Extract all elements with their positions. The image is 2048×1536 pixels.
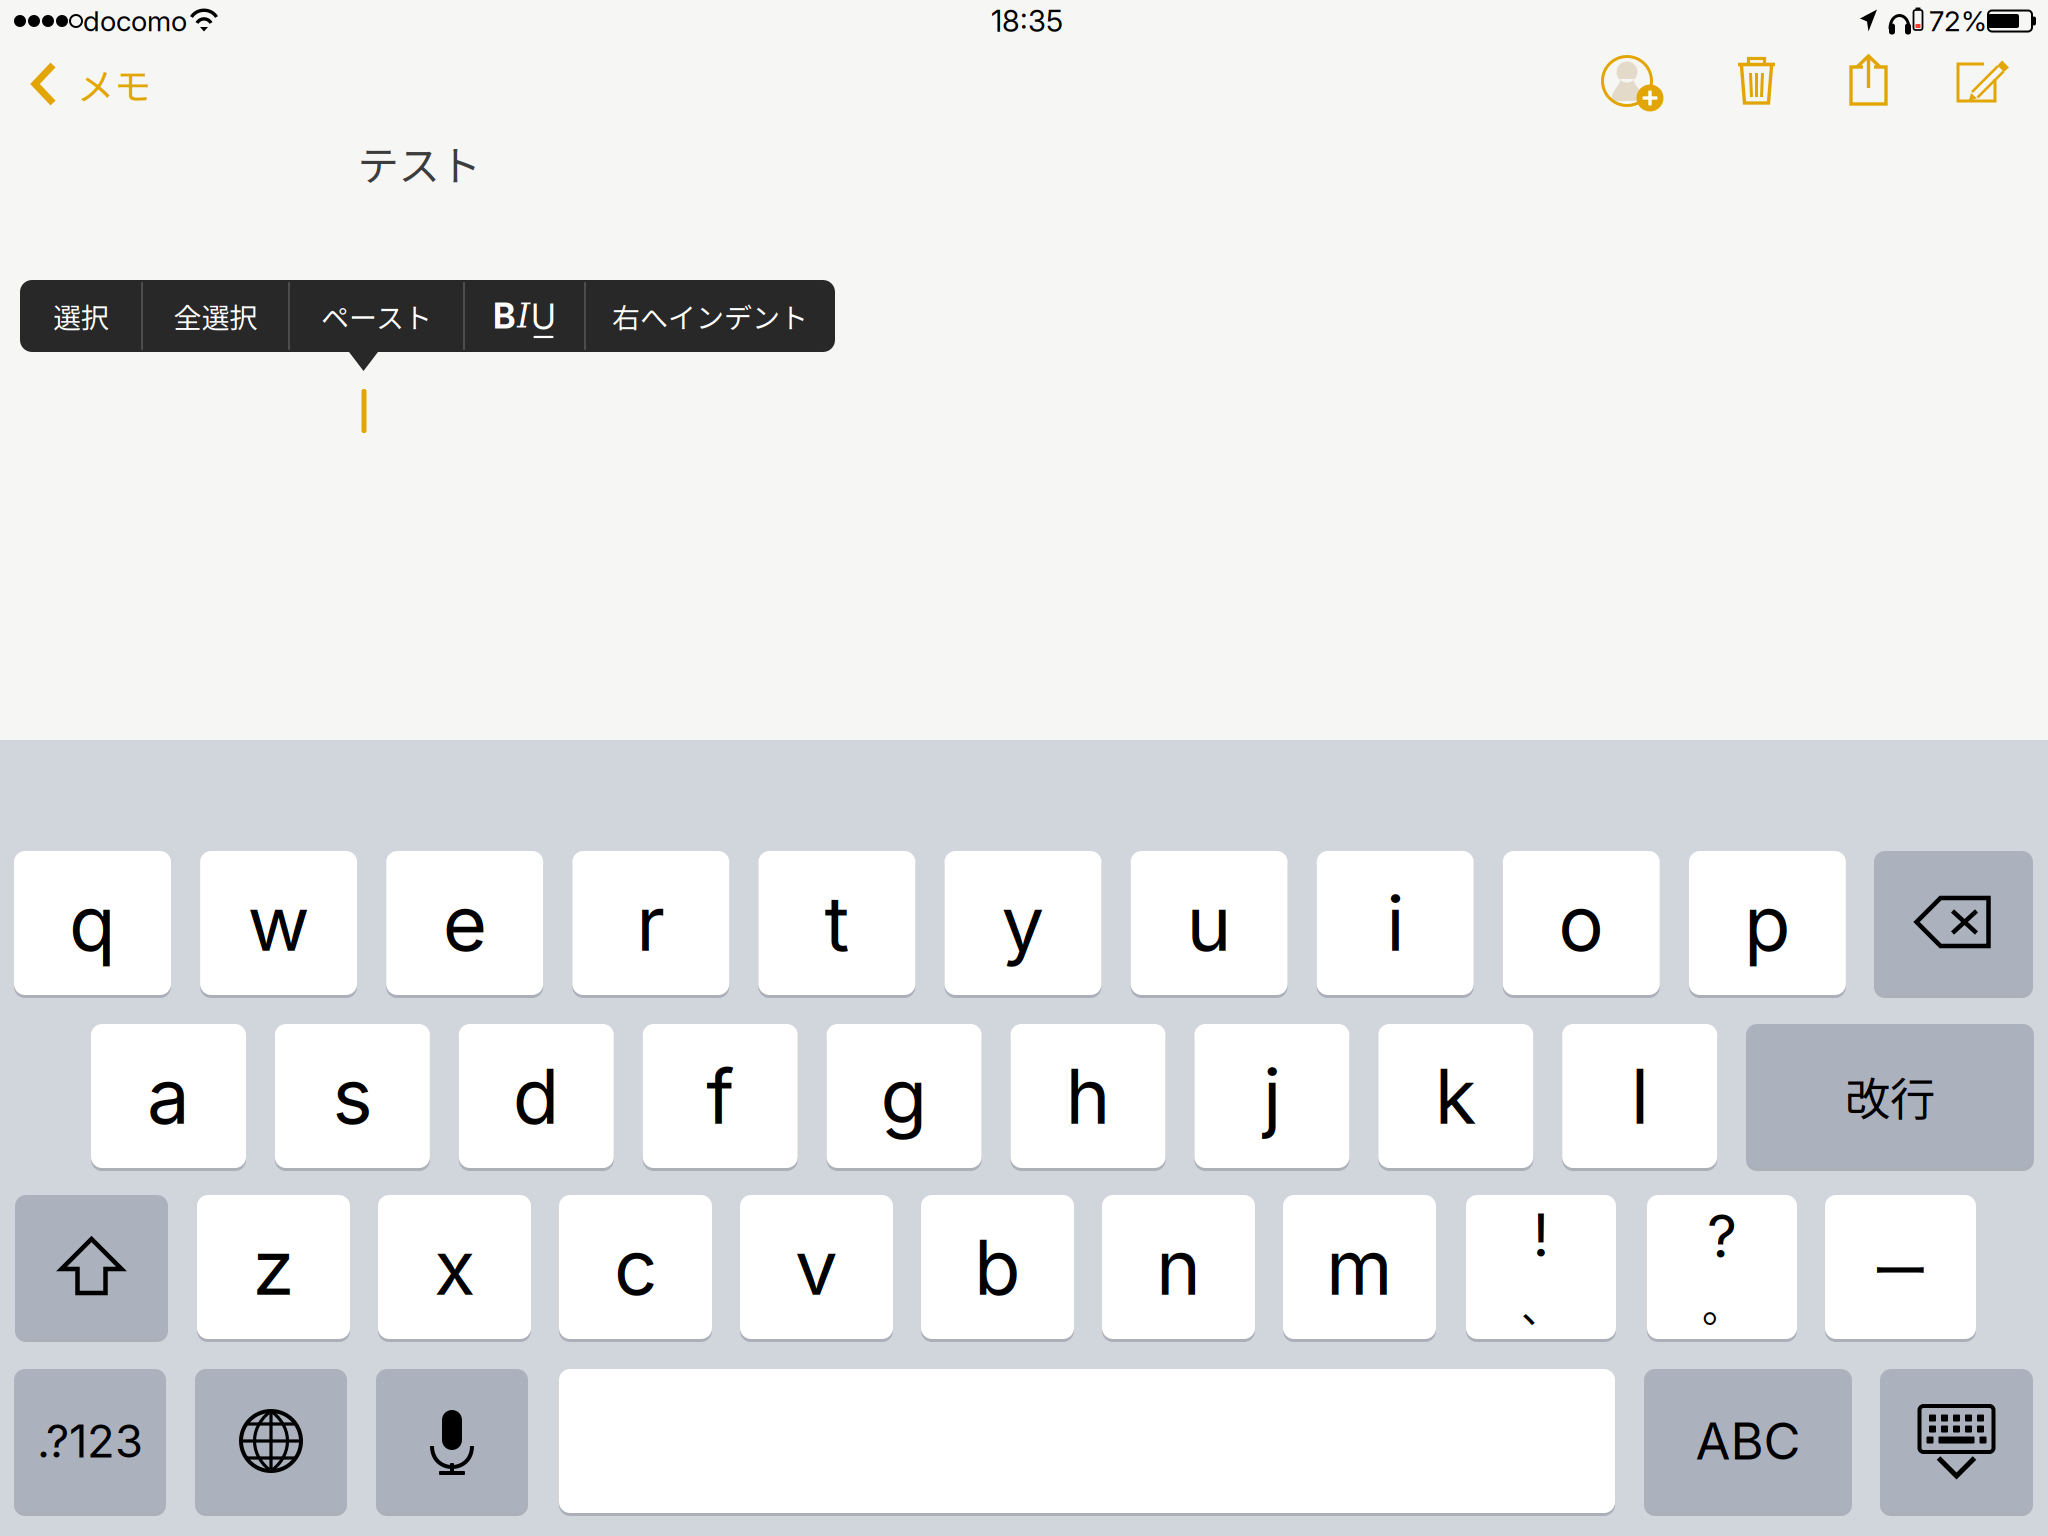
- staticText: v: [795, 1221, 838, 1313]
- button[interactable]: f: [643, 1022, 798, 1169]
- staticText: m: [1326, 1221, 1393, 1313]
- button[interactable]: Delete: [1725, 48, 1789, 114]
- staticText: ー: [1871, 1224, 1930, 1309]
- button[interactable]: g: [827, 1022, 982, 1169]
- button[interactable]: Shift: [15, 1193, 168, 1340]
- staticText: h: [1065, 1050, 1110, 1142]
- button[interactable]: w: [200, 849, 357, 996]
- staticText: z: [252, 1221, 294, 1313]
- staticText: ABC: [1695, 1410, 1800, 1472]
- button[interactable]: 改行: [1746, 1022, 2034, 1169]
- staticText: 18:35: [991, 3, 1063, 39]
- staticText: B: [493, 295, 516, 337]
- button[interactable]: ー: [1825, 1193, 1976, 1340]
- button[interactable]: q: [14, 849, 171, 996]
- staticText: p: [1744, 877, 1791, 969]
- staticText: s: [332, 1050, 372, 1142]
- button[interactable]: l: [1562, 1022, 1717, 1169]
- staticText: r: [636, 877, 665, 969]
- staticText: I: [517, 297, 530, 335]
- staticText: ペースト: [321, 296, 432, 336]
- button[interactable]: 選択: [20, 280, 142, 352]
- staticText: U: [531, 296, 556, 338]
- button[interactable]: e: [386, 849, 543, 996]
- button[interactable]: ABC: [1644, 1367, 1852, 1514]
- button[interactable]: Backspace: [1874, 849, 2033, 996]
- button[interactable]: c: [559, 1193, 712, 1340]
- staticText: !: [1532, 1199, 1549, 1270]
- staticText: g: [881, 1050, 928, 1142]
- button[interactable]: Add People: [1589, 48, 1669, 114]
- staticText: o: [1558, 877, 1604, 969]
- staticText: l: [1631, 1050, 1649, 1142]
- staticText: 選択: [53, 296, 109, 336]
- button[interactable]: .?123: [14, 1367, 166, 1514]
- button[interactable]: [559, 1367, 1615, 1514]
- button[interactable]: b: [921, 1193, 1074, 1340]
- button[interactable]: j: [1194, 1022, 1349, 1169]
- button[interactable]: 右へインデント: [585, 280, 835, 352]
- button[interactable]: z: [197, 1193, 350, 1340]
- button[interactable]: B: [464, 280, 585, 352]
- staticText: w: [248, 877, 310, 969]
- button[interactable]: Exclamation: [1466, 1193, 1616, 1340]
- button[interactable]: a: [91, 1022, 246, 1169]
- staticText: 、: [1521, 1276, 1561, 1334]
- staticText: テスト: [357, 133, 480, 193]
- button[interactable]: t: [758, 849, 915, 996]
- button[interactable]: v: [740, 1193, 893, 1340]
- staticText: c: [614, 1221, 657, 1313]
- button[interactable]: Hide Keyboard: [1880, 1367, 2033, 1514]
- staticText: t: [824, 877, 849, 969]
- button[interactable]: u: [1131, 849, 1288, 996]
- staticText: メモ: [77, 57, 151, 111]
- staticText: a: [147, 1050, 190, 1142]
- staticText: i: [1386, 877, 1404, 969]
- button[interactable]: s: [275, 1022, 430, 1169]
- button[interactable]: メモ: [21, 53, 161, 115]
- button[interactable]: 全選択: [142, 280, 289, 352]
- button[interactable]: i: [1317, 849, 1474, 996]
- button[interactable]: ペースト: [289, 280, 464, 352]
- staticText: n: [1156, 1221, 1201, 1313]
- staticText: e: [443, 877, 487, 969]
- button[interactable]: h: [1010, 1022, 1165, 1169]
- staticText: 72%: [1929, 4, 1987, 38]
- staticText: k: [1435, 1050, 1477, 1142]
- staticText: 全選択: [173, 296, 257, 336]
- staticText: 改行: [1845, 1063, 1935, 1129]
- button[interactable]: p: [1689, 849, 1846, 996]
- staticText: 。: [1702, 1275, 1742, 1333]
- staticText: q: [69, 877, 116, 969]
- staticText: d: [513, 1050, 560, 1142]
- staticText: ?: [1707, 1200, 1737, 1271]
- button[interactable]: New Note: [1951, 48, 2017, 114]
- button[interactable]: o: [1503, 849, 1660, 996]
- button[interactable]: Question: [1647, 1193, 1797, 1340]
- button[interactable]: r: [572, 849, 729, 996]
- staticText: .?123: [37, 1414, 143, 1468]
- button[interactable]: y: [944, 849, 1101, 996]
- staticText: 右へインデント: [612, 296, 808, 336]
- staticText: b: [974, 1221, 1021, 1313]
- button[interactable]: n: [1102, 1193, 1255, 1340]
- staticText: x: [434, 1221, 475, 1313]
- button[interactable]: Share: [1837, 48, 1901, 114]
- staticText: j: [1263, 1050, 1281, 1142]
- staticText: f: [706, 1050, 734, 1142]
- button[interactable]: Dictation: [376, 1367, 528, 1514]
- button[interactable]: x: [378, 1193, 531, 1340]
- staticText: u: [1187, 877, 1232, 969]
- button[interactable]: k: [1378, 1022, 1533, 1169]
- button[interactable]: m: [1283, 1193, 1436, 1340]
- staticText: docomo: [83, 4, 187, 38]
- button[interactable]: [464, 280, 585, 352]
- button[interactable]: d: [459, 1022, 614, 1169]
- button[interactable]: Next Keyboard: [195, 1367, 347, 1514]
- staticText: y: [1001, 877, 1044, 969]
